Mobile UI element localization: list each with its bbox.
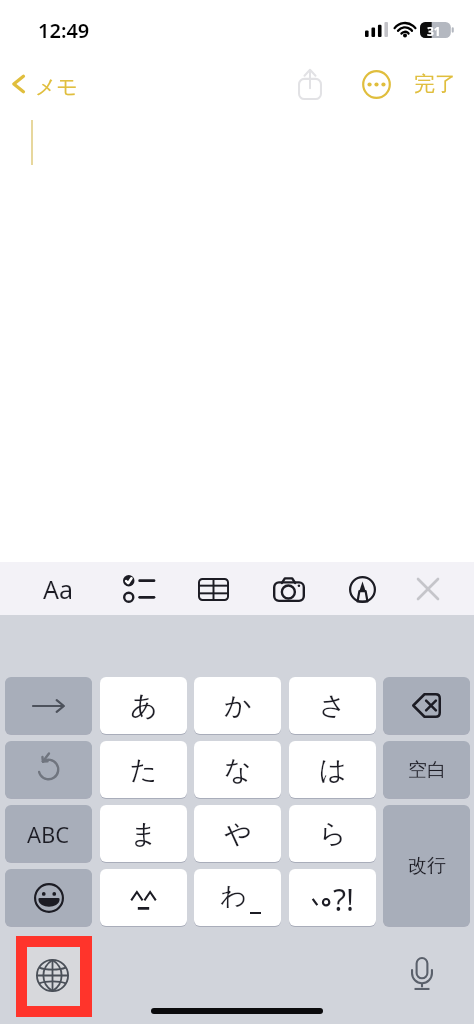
button[interactable]: smiley [5, 869, 92, 926]
button[interactable]: undo [5, 741, 92, 798]
button[interactable]: Change keyboard language [27, 947, 80, 1006]
button[interactable]: Close keyboard [404, 566, 452, 612]
staticText: や [224, 817, 252, 851]
button[interactable]: た [100, 741, 187, 798]
button[interactable]: More options [354, 62, 398, 106]
button[interactable]: 改行 [383, 805, 470, 926]
button[interactable]: や [194, 805, 281, 862]
staticText: ら [319, 817, 347, 851]
button[interactable]: kao [100, 869, 187, 926]
button[interactable]: Markup [338, 566, 386, 612]
button[interactable]: は [289, 741, 376, 798]
staticText: 空白 [408, 758, 446, 782]
button[interactable]: ら [289, 805, 376, 862]
button[interactable]: さ [289, 677, 376, 734]
button[interactable]: か [194, 677, 281, 734]
button[interactable]: わ [194, 869, 281, 926]
button[interactable]: bksp [383, 677, 470, 734]
staticText: 31 [427, 23, 441, 39]
staticText: た [130, 753, 158, 787]
staticText: メモ [35, 74, 78, 100]
staticText: あ [130, 689, 158, 723]
staticText: は [319, 753, 347, 787]
staticText: Aa [43, 572, 74, 606]
button[interactable]: あ [100, 677, 187, 734]
staticText: わ [220, 880, 247, 913]
button[interactable]: Dictation [400, 951, 444, 995]
button[interactable]: ま [100, 805, 187, 862]
button[interactable]: ABC [5, 805, 92, 862]
staticText: か [224, 689, 252, 723]
staticText: ?! [333, 879, 355, 911]
button[interactable]: Share [288, 62, 332, 106]
staticText: 12:49 [38, 17, 90, 44]
button[interactable]: メモ [12, 62, 78, 88]
button[interactable]: arrow [5, 677, 92, 734]
button[interactable]: Text format [34, 566, 82, 612]
button[interactable]: 空白 [383, 741, 470, 798]
button[interactable]: 、。?! [289, 869, 376, 926]
staticText: ABC [27, 819, 70, 849]
button[interactable]: な [194, 741, 281, 798]
button[interactable]: Checklist [114, 566, 162, 612]
button[interactable]: Camera [265, 566, 313, 612]
staticText: ま [130, 817, 158, 851]
button[interactable]: Table [189, 566, 237, 612]
staticText: な [224, 753, 252, 787]
staticText: さ [319, 689, 347, 723]
staticText: 完了 [414, 71, 456, 97]
button[interactable]: 完了 [410, 62, 460, 106]
staticText: 改行 [408, 854, 446, 878]
